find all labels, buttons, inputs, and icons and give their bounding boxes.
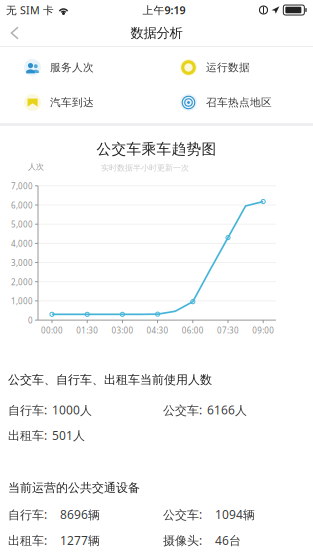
button[interactable]: 服务人次 <box>0 50 156 85</box>
staticText: 04:30 <box>147 325 169 336</box>
staticText: 03:00 <box>111 325 133 336</box>
staticText: 4,000 <box>11 238 33 249</box>
staticText: 自行车: <box>8 506 47 522</box>
staticText: 人次 <box>28 162 44 172</box>
staticText: 07:30 <box>217 325 239 336</box>
staticText: 06:00 <box>182 325 204 336</box>
staticText: 上午9:19 <box>142 3 185 17</box>
staticText: 公交车: <box>163 402 202 418</box>
staticText: 46台 <box>215 532 241 548</box>
button[interactable]: 召车热点地区 <box>156 85 313 120</box>
staticText: 公交车乘车趋势图 <box>96 140 216 158</box>
staticText: 出租车: <box>8 532 47 548</box>
staticText: 1000人 <box>52 402 92 418</box>
staticText: 运行数据 <box>206 61 250 74</box>
staticText: 召车热点地区 <box>206 96 272 109</box>
button[interactable]: 返回 <box>0 20 29 46</box>
staticText: 00:00 <box>41 325 63 336</box>
staticText: 摄像头: <box>163 532 202 548</box>
staticText: 当前运营的公共交通设备 <box>8 480 140 495</box>
staticText: 6166人 <box>207 402 247 418</box>
staticText: 服务人次 <box>50 61 94 74</box>
staticText: 公交车: <box>163 506 202 522</box>
staticText: 5,000 <box>11 219 33 230</box>
staticText: 1277辆 <box>60 532 100 548</box>
staticText: 数据分析 <box>130 25 182 41</box>
button[interactable]: 汽车到达 <box>0 85 156 120</box>
staticText: 2,000 <box>11 277 33 287</box>
staticText: 6,000 <box>11 200 33 211</box>
staticText: 无 SIM 卡 <box>6 3 54 17</box>
staticText: 01:30 <box>76 325 98 336</box>
staticText: 09:00 <box>252 325 274 336</box>
staticText: 501人 <box>52 427 85 443</box>
staticText: 1094辆 <box>215 506 255 522</box>
staticText: 3,000 <box>11 257 33 268</box>
staticText: 0 <box>28 315 33 326</box>
staticText: 汽车到达 <box>50 96 94 109</box>
staticText: 出租车: <box>8 427 47 443</box>
staticText: 实时数据半小时更新一次 <box>101 163 189 173</box>
button[interactable]: 运行数据 <box>156 50 313 85</box>
staticText: 自行车: <box>8 402 47 418</box>
staticText: 8696辆 <box>60 506 100 522</box>
staticText: 7,000 <box>11 181 33 191</box>
staticText: 1,000 <box>11 296 33 306</box>
staticText: 公交车、自行车、出租车当前使用人数 <box>8 372 212 387</box>
